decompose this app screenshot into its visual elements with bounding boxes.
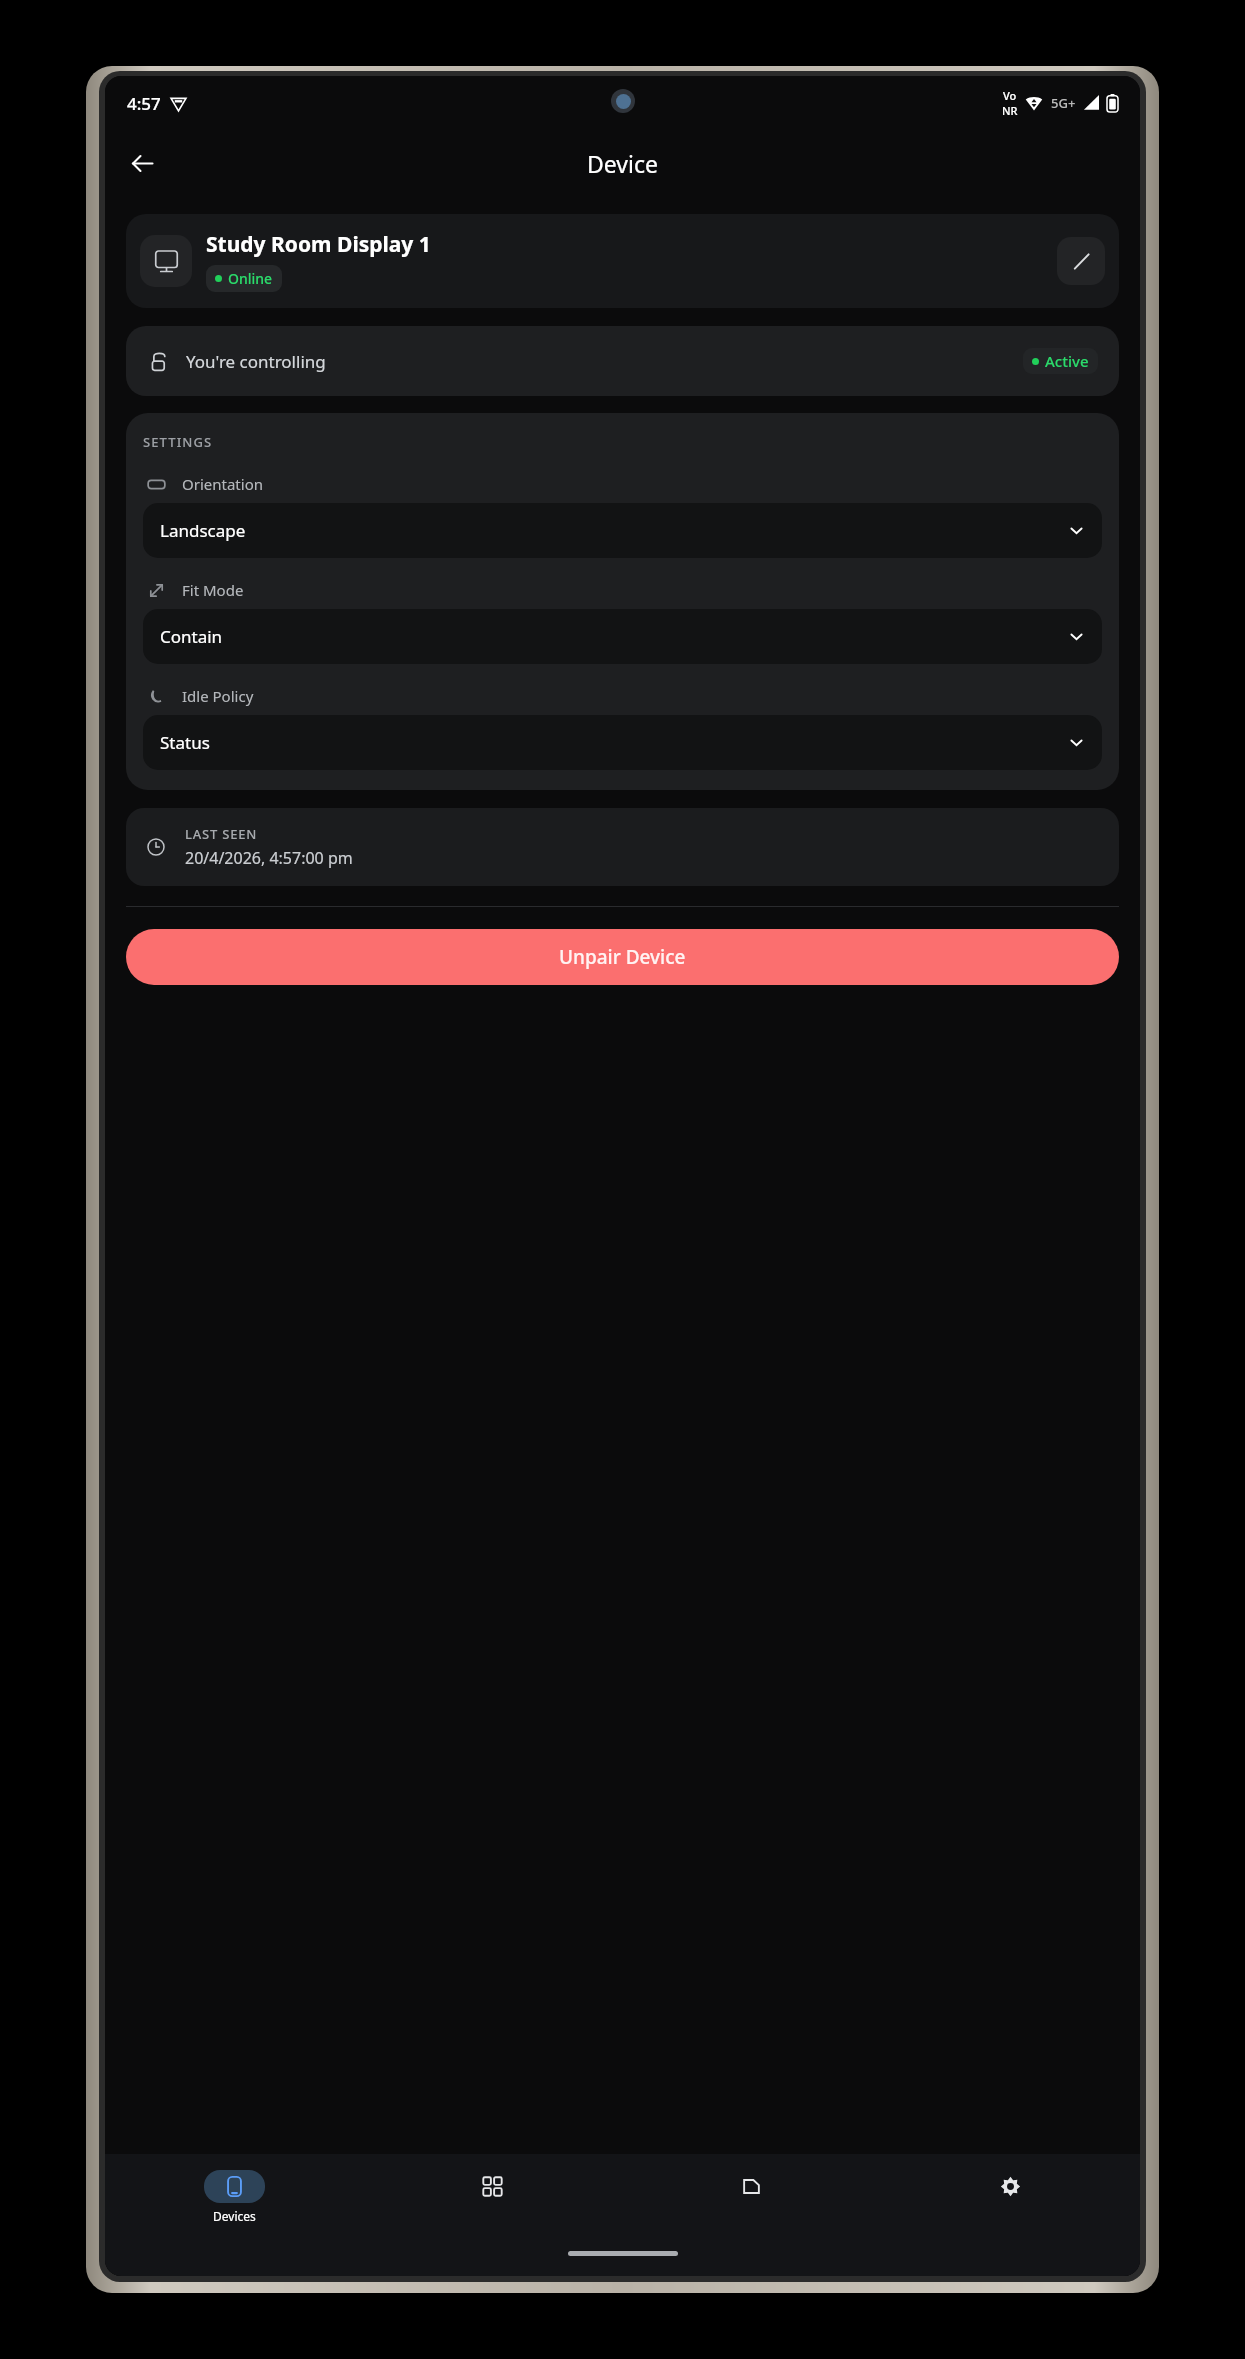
staticText: Status — [160, 731, 1068, 754]
staticText: 5G+ — [1051, 94, 1076, 112]
staticText: Online — [228, 269, 273, 288]
staticText: Vo — [1003, 88, 1017, 103]
staticText: Contain — [160, 625, 1068, 648]
button[interactable]: Edit device name — [1057, 237, 1105, 285]
staticText: 20/4/2026, 4:57:00 pm — [185, 847, 353, 869]
button[interactable]: You're controlling — [126, 326, 1119, 396]
button[interactable]: Apps — [363, 2166, 622, 2207]
button[interactable]: Study Room Display 1 — [126, 214, 1119, 308]
staticText: Idle Policy — [182, 686, 254, 706]
staticText: LAST SEEN — [185, 825, 258, 843]
staticText: SETTINGS — [143, 433, 213, 451]
button[interactable]: Settings — [881, 2166, 1140, 2207]
staticText: Fit Mode — [182, 580, 244, 600]
button[interactable]: Back — [119, 140, 165, 186]
button[interactable]: Landscape — [143, 503, 1102, 558]
staticText: Device — [587, 148, 658, 179]
staticText: You're controlling — [186, 350, 1023, 373]
staticText: Unpair Device — [559, 944, 686, 970]
button[interactable]: LAST SEEN — [126, 808, 1119, 886]
staticText: 4:57 — [127, 92, 161, 115]
button[interactable]: Files — [622, 2166, 881, 2207]
button[interactable]: Unpair Device — [126, 929, 1119, 985]
button[interactable]: Status — [143, 715, 1102, 770]
staticText: NR — [1002, 103, 1018, 118]
button[interactable]: Devices — [105, 2166, 363, 2228]
staticText: Orientation — [182, 474, 263, 494]
staticText: Landscape — [160, 519, 1068, 542]
button[interactable]: Contain — [143, 609, 1102, 664]
staticText: Active — [1045, 351, 1089, 371]
staticText: Devices — [213, 2208, 256, 2224]
staticText: Study Room Display 1 — [206, 230, 431, 259]
